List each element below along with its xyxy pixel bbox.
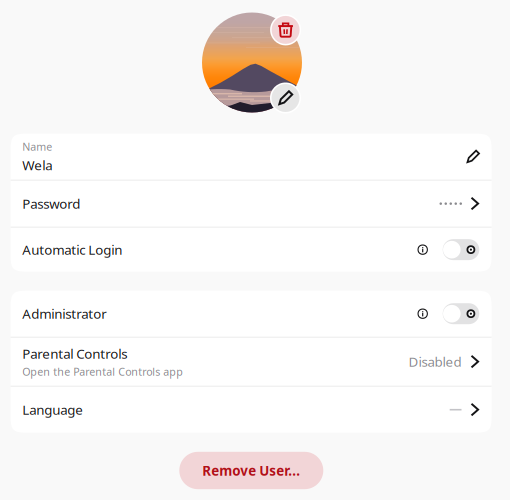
staticText: Open the Parental Controls app: [22, 364, 183, 379]
staticText: Disabled: [408, 353, 461, 370]
button[interactable]: Name: [11, 134, 492, 180]
button[interactable]: Administrator: [443, 303, 479, 324]
staticText: Language: [22, 401, 83, 418]
button[interactable]: Remove User...: [179, 452, 323, 489]
button[interactable]: Language: [11, 387, 492, 433]
button[interactable]: Automatic Login: [443, 239, 479, 260]
staticText: Wela: [22, 156, 52, 174]
button[interactable]: Edit picture: [270, 82, 301, 113]
staticText: Password: [22, 195, 80, 212]
button[interactable]: Parental Controls: [11, 338, 492, 386]
staticText: Name: [22, 139, 52, 154]
staticText: Administrator: [22, 305, 107, 322]
staticText: Automatic Login: [22, 241, 122, 258]
staticText: Parental Controls: [22, 345, 127, 362]
button[interactable]: Delete picture: [270, 14, 301, 45]
staticText: Remove User...: [202, 462, 300, 479]
button[interactable]: Password: [11, 181, 492, 227]
